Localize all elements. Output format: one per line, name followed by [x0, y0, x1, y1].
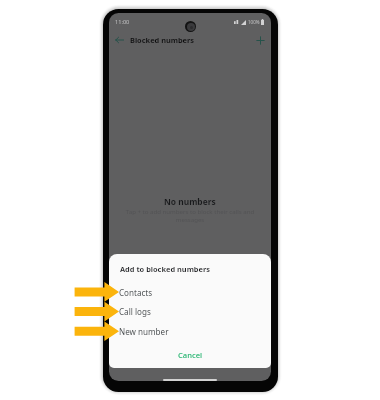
staticText: No numbers [164, 196, 216, 207]
staticText: Blocked numbers [130, 35, 195, 45]
staticText: Contacts [119, 287, 153, 298]
staticText: New number [119, 326, 169, 337]
button[interactable]: Contacts [109, 282, 271, 302]
staticText: Call logs [119, 306, 151, 317]
button[interactable]: Back [112, 33, 126, 47]
button[interactable]: Add blocked number [252, 32, 268, 48]
staticText: Add to blocked numbers [120, 264, 210, 274]
staticText: 11:00 [115, 18, 130, 26]
button[interactable]: Call logs [109, 301, 271, 321]
staticText: 100% [248, 19, 260, 25]
staticText: Cancel [178, 350, 203, 360]
button[interactable]: Cancel [109, 345, 271, 365]
button[interactable]: New number [109, 321, 271, 341]
